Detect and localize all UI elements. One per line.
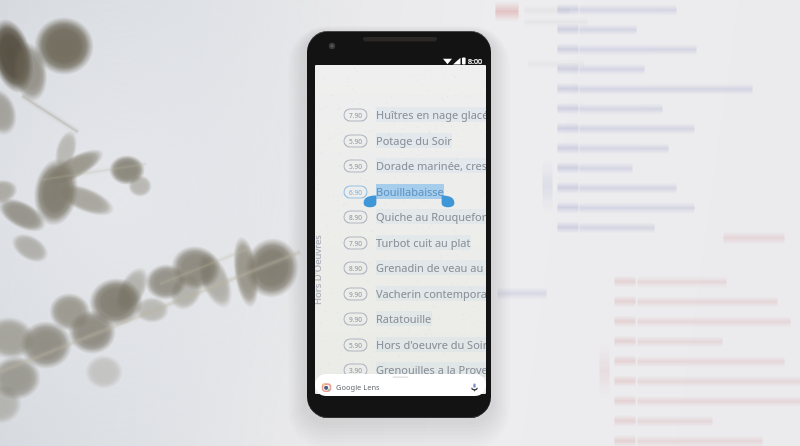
staticText: Vacherin contemporai [376,286,486,301]
button[interactable]: 8.90 [315,255,486,281]
staticText: 9.90 [349,290,362,299]
button[interactable]: Google Lens [315,376,486,396]
staticText: 7.90 [349,239,362,248]
button[interactable]: 7.90 [315,230,486,256]
button[interactable]: 6.90 [315,179,486,205]
staticText: 5.90 [349,341,362,350]
button[interactable]: 9.90 [315,281,486,307]
staticText: Hors d'oeuvre du Soir [376,337,486,352]
staticText: 9.90 [349,315,362,324]
staticText: Turbot cuit au plat [376,235,471,250]
button[interactable]: 5.90 [315,153,486,179]
staticText: 8.90 [349,264,362,273]
button[interactable]: 3.90 [315,357,486,383]
button[interactable]: 5.90 [315,332,486,358]
staticText: Ratatouille [376,311,432,326]
staticText: Grenouilles a la Prove [376,362,486,377]
button[interactable]: 5.90 [315,128,486,154]
staticText: 5.90 [349,137,362,146]
staticText: Bouillabaisse [376,184,444,199]
staticText: 6.90 [349,188,362,197]
other: Voice search [470,383,479,392]
staticText: 7.90 [349,111,362,120]
button[interactable]: 9.90 [315,306,486,332]
staticText: 8:00 [468,57,482,67]
staticText: Grenadin de veau au s [376,260,486,275]
staticText: Potage du Soir [376,133,452,148]
staticText: Dorade marinée, cress [376,158,486,173]
staticText: 8.90 [349,213,362,222]
staticText: Quiche au Rouquefort [376,209,486,224]
staticText: 3.90 [349,366,362,375]
button[interactable]: 8.90 [315,204,486,230]
staticText: Google Lens [336,382,380,392]
other: Google Lens [322,383,331,392]
staticText: Huîtres en nage glacée [376,107,486,122]
staticText: 5.90 [349,162,362,171]
button[interactable]: 7.90 [315,102,486,128]
staticText: Hors D'Oeuvres [315,235,324,305]
